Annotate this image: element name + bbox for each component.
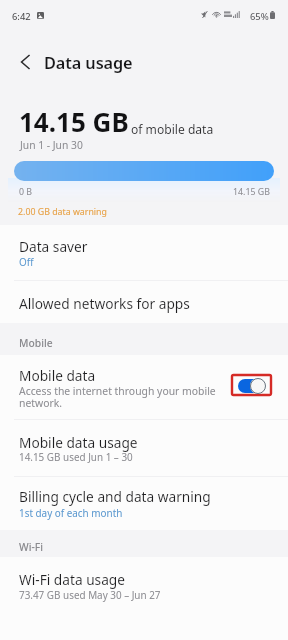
- staticText: 6:42: [12, 10, 31, 23]
- staticText: Off: [19, 255, 34, 268]
- staticText: 73.47 GB used May 30 – Jun 27: [19, 588, 161, 601]
- staticText: Mobile: [19, 336, 53, 350]
- staticText: 65%: [250, 10, 269, 23]
- staticText: of mobile data: [131, 121, 214, 137]
- button[interactable]: Mobile data usage: [0, 420, 288, 476]
- button[interactable]: Mobile data: [0, 355, 288, 419]
- staticText: 0 B: [19, 186, 33, 198]
- staticText: Allowed networks for apps: [19, 294, 190, 313]
- staticText: Access the internet through your mobile …: [19, 384, 219, 410]
- button[interactable]: Mobile data, on: [232, 375, 271, 395]
- staticText: Billing cycle and data warning: [19, 487, 211, 506]
- button[interactable]: Allowed networks for apps: [0, 281, 288, 323]
- staticText: 14.15 GB: [19, 104, 129, 139]
- staticText: Jun 1 - Jun 30: [20, 138, 83, 152]
- staticText: 1st day of each month: [19, 506, 123, 519]
- staticText: Mobile data: [19, 366, 96, 385]
- staticText: Data saver: [19, 237, 88, 256]
- button[interactable]: Wi-Fi data usage: [0, 557, 288, 617]
- button[interactable]: Billing cycle and data warning: [0, 477, 288, 530]
- staticText: 14.15 GB used Jun 1 – 30: [19, 450, 133, 463]
- staticText: 14.15 GB: [233, 186, 270, 198]
- staticText: Data usage: [44, 52, 133, 74]
- staticText: Wi-Fi: [19, 540, 43, 554]
- staticText: Wi-Fi data usage: [19, 570, 125, 589]
- button[interactable]: Data saver: [0, 225, 288, 280]
- staticText: 2.00 GB data warning: [18, 206, 107, 218]
- staticText: Mobile data usage: [19, 433, 138, 452]
- button[interactable]: Navigate up: [3, 40, 47, 84]
